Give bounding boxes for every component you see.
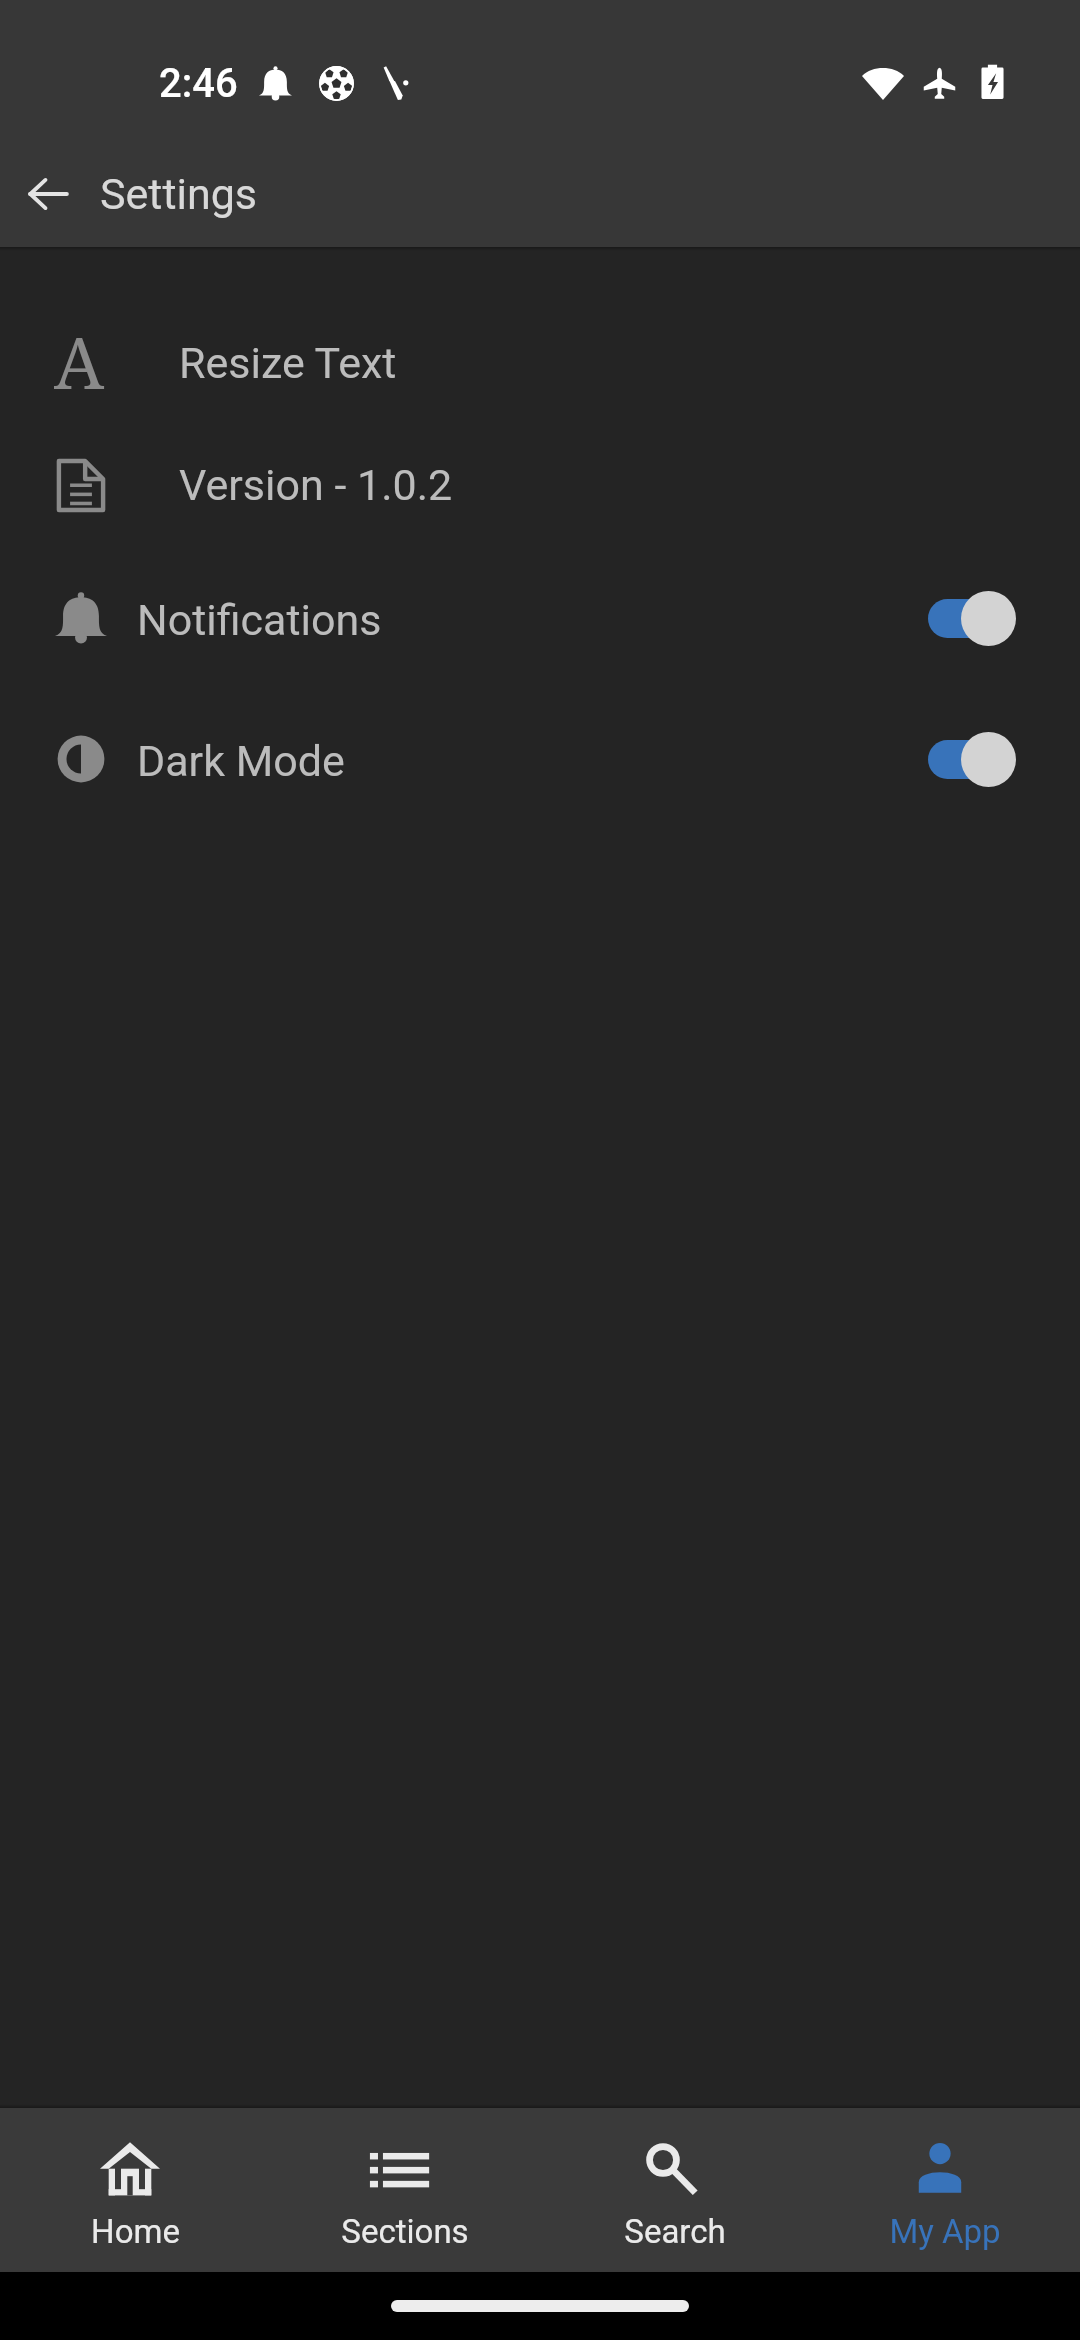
button[interactable]: Back — [8, 154, 88, 234]
staticText: Sections — [341, 2212, 469, 2251]
button[interactable]: Search — [540, 2108, 810, 2272]
button[interactable]: Toggle Notifications — [928, 590, 1016, 646]
button[interactable]: A — [0, 302, 1080, 424]
button[interactable]: Version - 1.0.2 — [0, 424, 1080, 546]
staticText: My App — [889, 2212, 1001, 2251]
staticText: Version - 1.0.2 — [179, 460, 453, 510]
staticText: Home — [91, 2212, 180, 2251]
staticText: Settings — [100, 169, 258, 219]
staticText: Resize Text — [179, 338, 397, 388]
staticText: A — [54, 313, 105, 410]
staticText: 2:46 — [159, 60, 238, 107]
staticText: Search — [624, 2212, 726, 2251]
button[interactable]: Home — [0, 2108, 270, 2272]
button[interactable]: Toggle Dark Mode — [928, 731, 1016, 787]
button[interactable]: My App — [810, 2108, 1080, 2272]
button[interactable]: Sections — [270, 2108, 540, 2272]
staticText: Notifications — [137, 595, 382, 645]
button[interactable]: Notifications — [0, 546, 1080, 685]
staticText: Dark Mode — [137, 736, 345, 786]
button[interactable]: Dark Mode — [0, 685, 1080, 829]
